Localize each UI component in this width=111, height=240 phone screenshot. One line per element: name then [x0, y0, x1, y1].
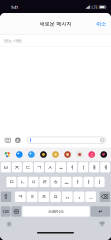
button[interactable]: ㅏ	[84, 177, 94, 187]
staticText: ㅌ	[30, 193, 35, 200]
staticText: ㅠ	[65, 193, 70, 200]
button[interactable]: Delete	[100, 191, 110, 202]
staticText: ㅋ	[18, 193, 23, 200]
button[interactable]: ㅎ	[50, 177, 60, 187]
staticText: ㅁ	[9, 179, 14, 185]
staticText: ㄱ	[36, 164, 41, 171]
button[interactable]: iMessage app	[13, 147, 25, 161]
staticText: ㅜ	[76, 193, 81, 200]
button[interactable]: ㅠ	[62, 191, 73, 202]
staticText: ㅅ	[47, 164, 52, 171]
staticText: ♫	[90, 152, 94, 157]
staticText: 스페이스	[48, 209, 64, 214]
staticText: 새로운 메시지	[39, 20, 71, 27]
button[interactable]: Switch keyboard	[11, 206, 21, 217]
staticText: LTE	[91, 4, 97, 10]
staticText: ⇧	[3, 193, 9, 201]
button[interactable]: ㄹ	[39, 177, 49, 187]
staticText: ㅏ	[86, 179, 91, 185]
button[interactable]: ㅂ	[1, 162, 11, 173]
staticText: ㅊ	[41, 193, 46, 200]
staticText: 9:41	[11, 4, 18, 10]
button[interactable]: Shift	[1, 191, 11, 202]
staticText: ㅣ	[97, 179, 102, 185]
staticText: ㅑ	[81, 164, 86, 171]
staticText: 받는 사람:	[4, 38, 22, 43]
staticText: ㅓ	[75, 179, 80, 185]
button[interactable]: ㅣ	[95, 177, 105, 187]
staticText: ㄴ	[20, 179, 25, 185]
button[interactable]: Take photo	[3, 133, 13, 147]
button[interactable]: ㅇ	[28, 177, 38, 187]
staticText: ㄹ	[42, 179, 47, 185]
button[interactable]: ㅔ	[100, 162, 110, 173]
button[interactable]: ㄷ	[23, 162, 33, 173]
button[interactable]: ㅐ	[89, 162, 99, 173]
button[interactable]: iMessage app	[61, 147, 74, 161]
button[interactable]: iMessage app	[49, 147, 62, 161]
button[interactable]: iMessage app	[74, 147, 86, 161]
staticText: ㅇ	[31, 179, 36, 185]
staticText: ㅕ	[70, 164, 75, 171]
button[interactable]: Dictate	[3, 218, 15, 230]
button[interactable]: ㅕ	[67, 162, 77, 173]
button[interactable]: 123	[1, 206, 10, 217]
staticText: ⌫	[101, 194, 109, 200]
button[interactable]: Hide keyboard	[97, 218, 108, 230]
staticText: ㄷ	[25, 164, 30, 171]
staticText: ㅔ	[103, 164, 108, 171]
staticText: ㅎ	[53, 179, 58, 185]
button[interactable]: ㅓ	[73, 177, 83, 187]
staticText: ㅐ	[92, 164, 97, 171]
button[interactable]: Apps	[13, 133, 23, 147]
button[interactable]: ㅊ	[38, 191, 49, 202]
button[interactable]: 취소	[91, 17, 111, 30]
button[interactable]: ㅈ	[12, 162, 22, 173]
button[interactable]: ㄱ	[34, 162, 44, 173]
button[interactable]: Return	[91, 206, 110, 217]
staticText: 123	[3, 209, 9, 214]
button[interactable]: ㅌ	[27, 191, 37, 202]
staticText: ♥	[102, 152, 106, 157]
button[interactable]: iMessage app	[98, 147, 110, 161]
button[interactable]: ㅋ	[15, 191, 26, 202]
staticText: 취소	[96, 20, 106, 27]
staticText: ↵	[98, 208, 102, 214]
button[interactable]: ㅛ	[56, 162, 66, 173]
button[interactable]: iMessage app	[86, 147, 98, 161]
button[interactable]: iMessage app	[37, 147, 49, 161]
staticText: ㅡ	[88, 193, 93, 200]
staticText: ㅍ	[53, 193, 58, 200]
button[interactable]: ㄴ	[17, 177, 27, 187]
staticText: ㅂ	[3, 164, 8, 171]
button[interactable]: ㅁ	[6, 177, 16, 187]
button[interactable]: ㅑ	[78, 162, 88, 173]
button[interactable]: 스페이스	[22, 206, 90, 217]
staticText: ㅗ	[64, 179, 69, 185]
button[interactable]: ㅅ	[45, 162, 55, 173]
button[interactable]: ㅜ	[74, 191, 84, 202]
button[interactable]: iMessage app	[25, 147, 37, 161]
button[interactable]: iMessage app	[1, 147, 13, 161]
button[interactable]: ㅡ	[85, 191, 96, 202]
button[interactable]: ㅍ	[50, 191, 61, 202]
staticText: A	[16, 137, 19, 143]
staticText: ㅛ	[58, 164, 63, 171]
button[interactable]: ㅗ	[61, 177, 71, 187]
staticText: ㅈ	[14, 164, 19, 171]
